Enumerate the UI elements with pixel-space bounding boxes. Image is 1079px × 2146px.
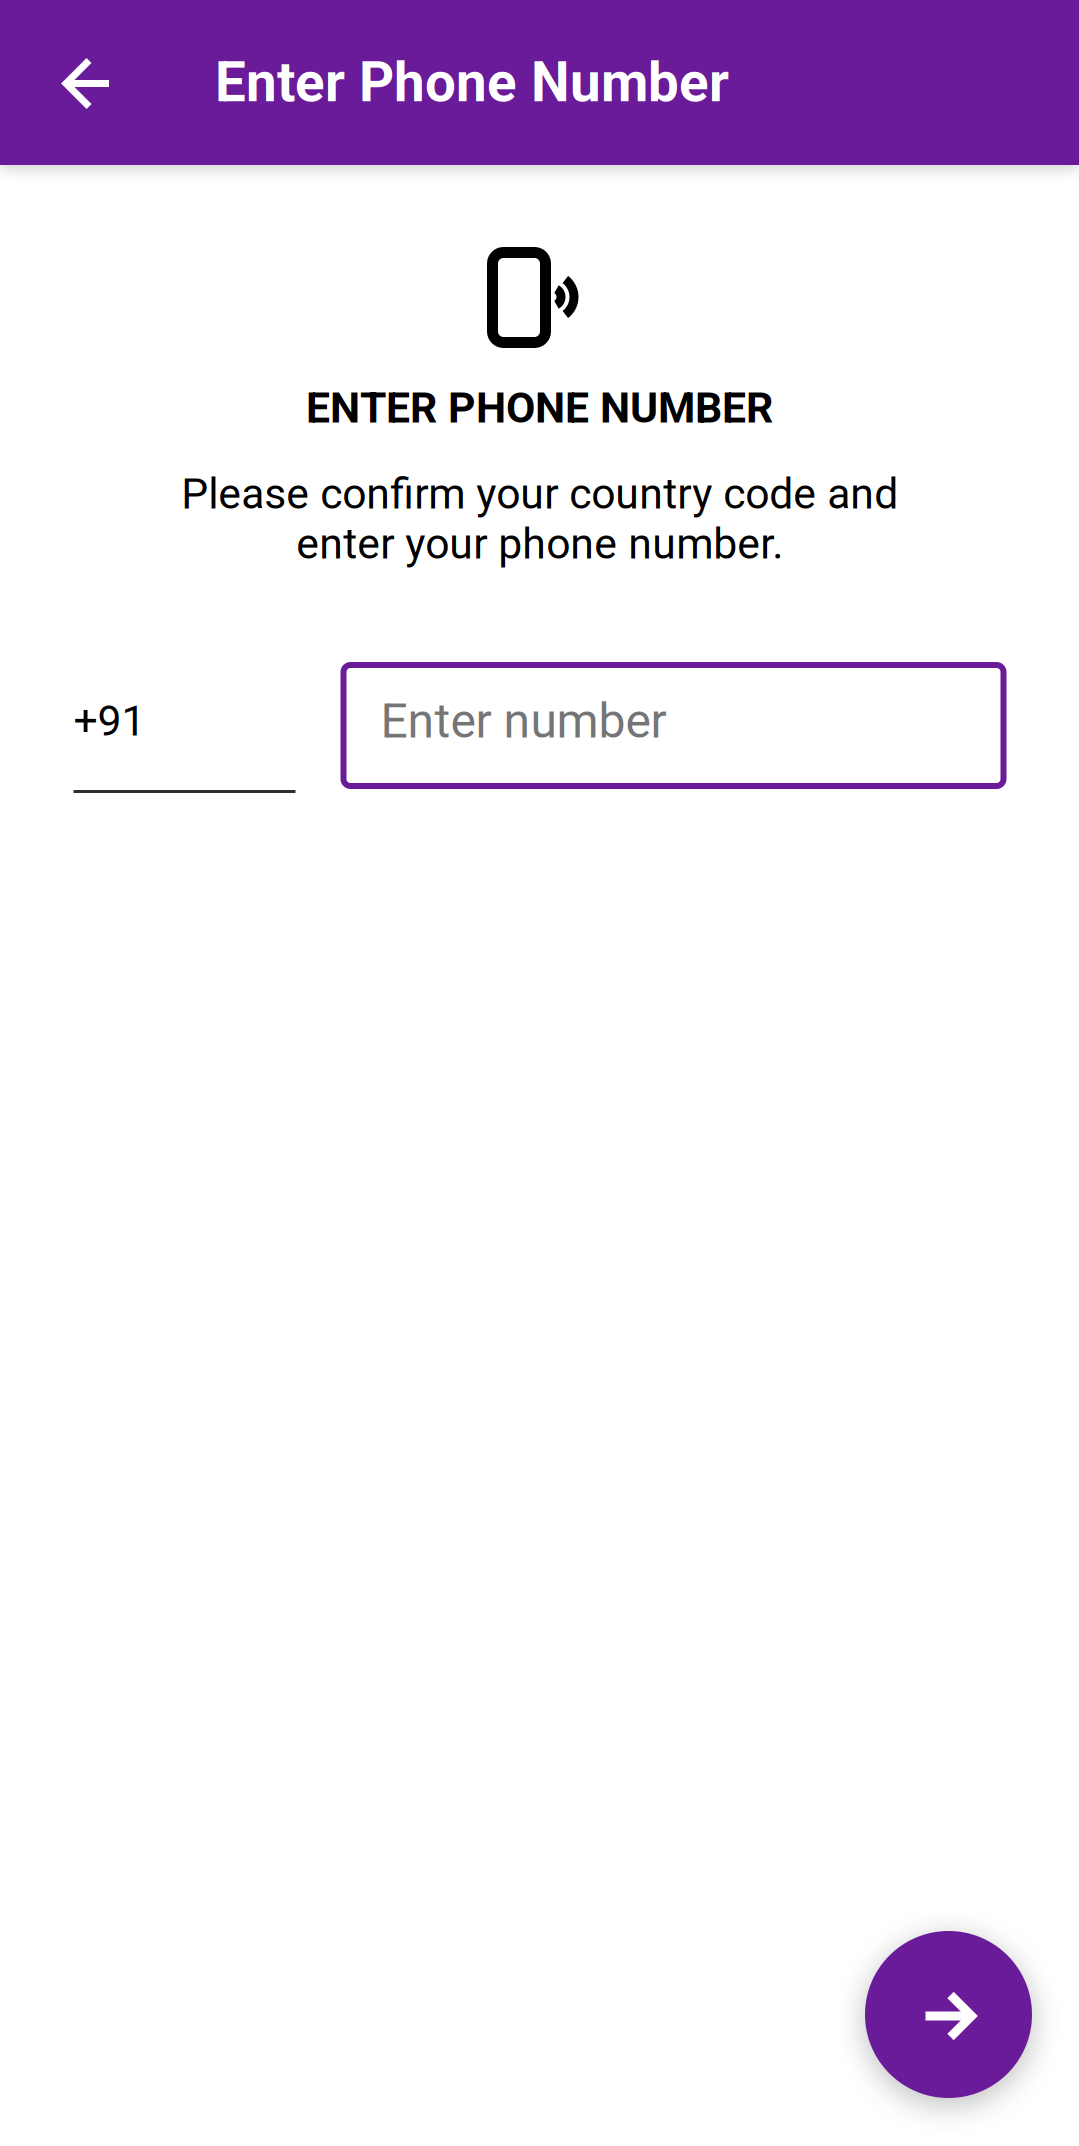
button[interactable]: Enter number [343,665,1003,786]
staticText: +91 [73,696,145,746]
staticText: Please confirm your country code and ent… [181,469,898,569]
button[interactable]: Continue [865,1931,1032,2098]
button[interactable]: Back [0,0,215,165]
staticText: ENTER PHONE NUMBER [306,383,773,433]
staticText: Enter number [380,693,666,749]
button[interactable]: +91 [73,665,295,793]
staticText: Enter Phone Number [215,50,729,115]
